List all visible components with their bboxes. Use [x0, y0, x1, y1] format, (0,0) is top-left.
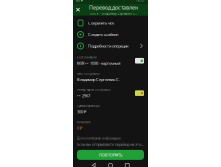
- button[interactable]: ПОВТОРИТЬ: [77, 150, 144, 160]
- staticText: мтс: [76, 0, 80, 2]
- button[interactable]: Back: [90, 161, 98, 167]
- staticText: Перевод доставлен: [89, 4, 138, 11]
- staticText: Владимир Сергеевич С.: [77, 77, 120, 82]
- staticText: Создать шаблон: [88, 32, 118, 37]
- button[interactable]: Сохранить чек: [73, 17, 148, 29]
- button[interactable]: Подробности операции: [73, 40, 148, 52]
- button[interactable]: Recent apps: [123, 161, 131, 167]
- staticText: 300 ₽: [77, 109, 86, 114]
- button[interactable]: Close: [73, 4, 83, 16]
- staticText: Номер карты получателя: [77, 88, 111, 91]
- button[interactable]: Создать шаблон: [73, 29, 148, 40]
- staticText: •• 2967: [77, 93, 90, 98]
- staticText: 0 ₽: [77, 125, 82, 131]
- staticText: Счёт списания: [77, 56, 97, 59]
- staticText: ФИО получателя: [77, 72, 100, 75]
- staticText: 18:37: [136, 0, 145, 2]
- staticText: ПОВТОРИТЬ: [99, 152, 122, 157]
- staticText: Сумма перевода: [77, 104, 99, 108]
- button[interactable]: Home: [106, 161, 114, 167]
- staticText: Подробности операции: [88, 43, 128, 49]
- staticText: Сохранить чек: [88, 20, 114, 26]
- staticText: Если вы отправляете перевод на этот…: [77, 142, 144, 147]
- staticText: 300 ₽ · Владимир Сергеевич С…: [90, 12, 137, 15]
- staticText: Комиссия: [77, 120, 91, 124]
- staticText: MIR •• 1090 · карточный: [77, 61, 120, 66]
- staticText: Дополнительная информация: [77, 137, 121, 140]
